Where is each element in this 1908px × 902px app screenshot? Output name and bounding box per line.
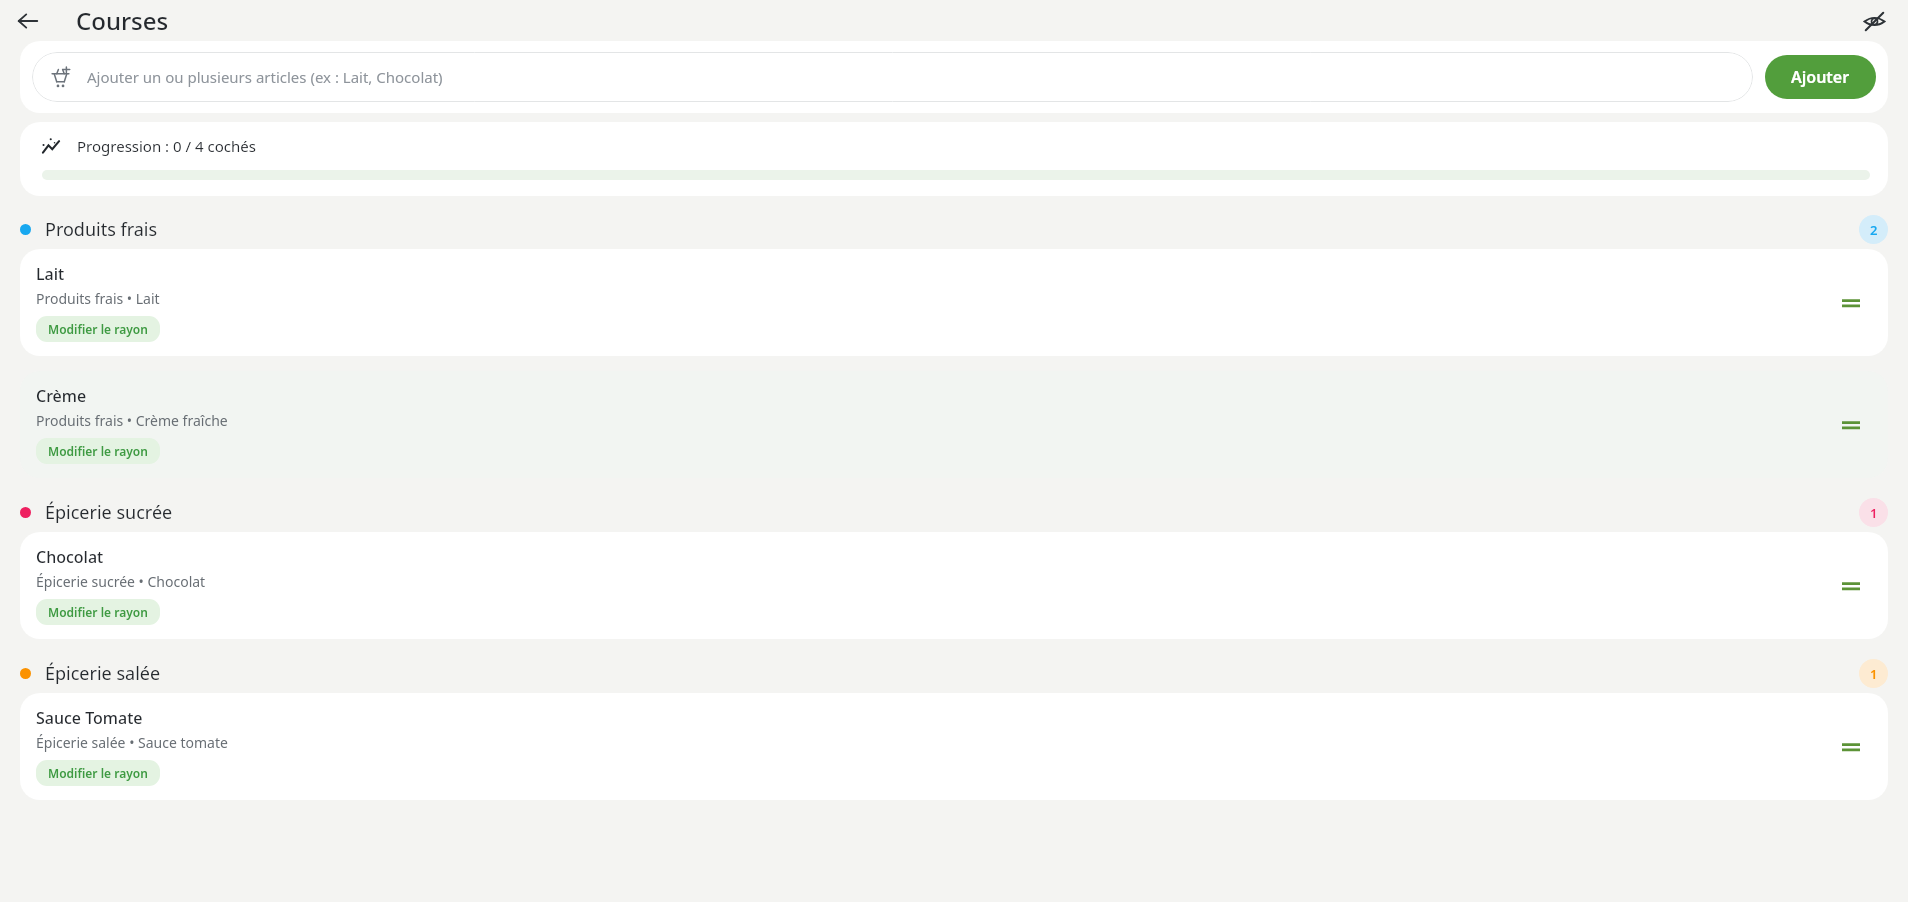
button[interactable]: Chocolat <box>20 532 1888 639</box>
button[interactable]: Modifier le rayon <box>36 316 160 342</box>
button[interactable]: Réordonner <box>1834 408 1868 442</box>
button[interactable]: Modifier le rayon <box>36 760 160 786</box>
staticText: Chocolat <box>36 546 104 568</box>
button[interactable]: Ajouter un ou plusieurs articles (ex : L… <box>32 52 1753 102</box>
staticText: Modifier le rayon <box>48 443 148 459</box>
staticText: Lait <box>36 263 65 285</box>
staticText: Produits frais <box>45 217 158 242</box>
button[interactable]: Sauce Tomate <box>20 693 1888 800</box>
staticText: Progression : 0 / 4 cochés <box>77 136 256 156</box>
staticText: Ajouter <box>1791 66 1850 88</box>
button[interactable]: Retour <box>8 1 48 41</box>
staticText: Produits frais • Crème fraîche <box>36 411 228 430</box>
button[interactable]: Modifier le rayon <box>36 438 160 464</box>
staticText: Sauce Tomate <box>36 707 143 729</box>
button[interactable]: Crème <box>20 371 1888 478</box>
button[interactable]: Épicerie salée <box>0 653 1908 693</box>
button[interactable]: Ajouter <box>1765 55 1876 99</box>
staticText: Modifier le rayon <box>48 604 148 620</box>
staticText: Courses <box>76 4 169 37</box>
staticText: Épicerie salée • Sauce tomate <box>36 733 228 752</box>
staticText: Produits frais • Lait <box>36 289 160 308</box>
button[interactable]: Réordonner <box>1834 730 1868 764</box>
staticText: Épicerie salée <box>45 661 161 686</box>
staticText: Modifier le rayon <box>48 321 148 337</box>
staticText: Modifier le rayon <box>48 765 148 781</box>
button[interactable]: Réordonner <box>1834 569 1868 603</box>
staticText: Ajouter un ou plusieurs articles (ex : L… <box>87 67 443 87</box>
button[interactable]: Masquer les articles cochés <box>1854 1 1894 41</box>
staticText: Épicerie sucrée • Chocolat <box>36 572 206 591</box>
staticText: Épicerie sucrée <box>45 500 173 525</box>
staticText: 1 <box>1870 665 1878 683</box>
button[interactable]: Réordonner <box>1834 286 1868 320</box>
staticText: Crème <box>36 385 87 407</box>
button[interactable]: Lait <box>20 249 1888 356</box>
button[interactable]: Modifier le rayon <box>36 599 160 625</box>
staticText: 1 <box>1870 504 1878 522</box>
button[interactable]: Produits frais <box>0 209 1908 249</box>
staticText: 2 <box>1870 221 1878 239</box>
button[interactable]: Épicerie sucrée <box>0 492 1908 532</box>
button[interactable]: Progression : 0 / 4 cochés <box>20 122 1888 196</box>
